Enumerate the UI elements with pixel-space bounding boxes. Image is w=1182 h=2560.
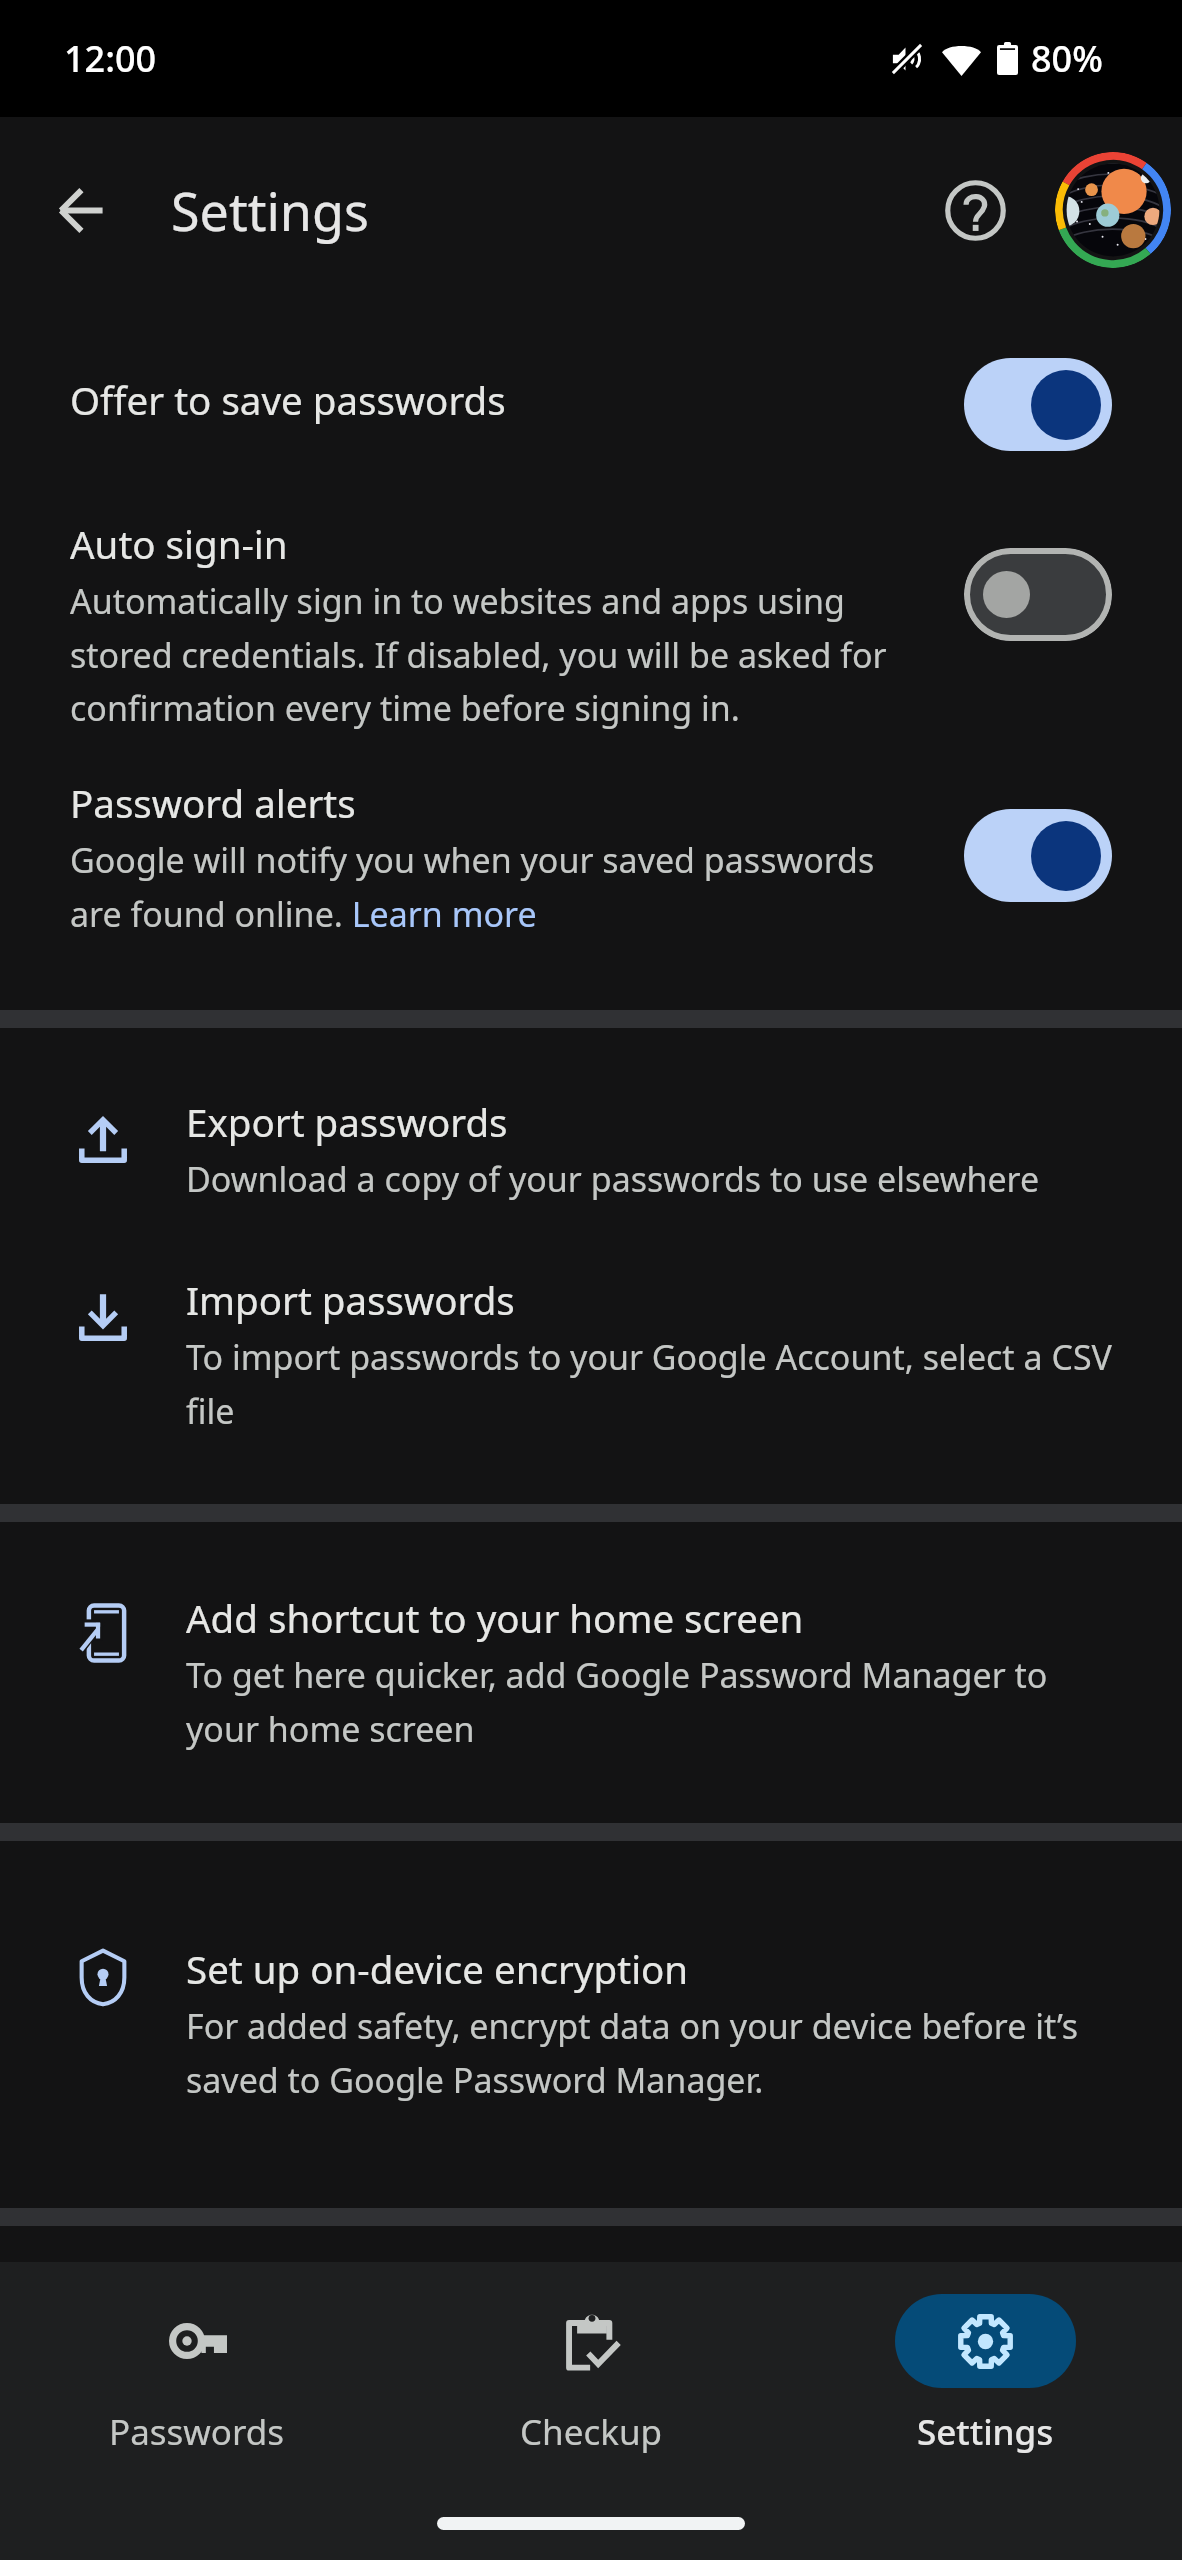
staticText: To get here quicker, add Google Password…: [186, 1652, 1116, 1752]
staticText: Automatically sign in to websites and ap…: [70, 578, 892, 731]
staticText: Settings: [917, 2408, 1054, 2456]
staticText: Auto sign-in: [70, 518, 288, 570]
button[interactable]: Import passwords: [0, 1202, 1182, 1434]
button[interactable]: Checkup: [394, 2294, 788, 2456]
staticText: Add shortcut to your home screen: [186, 1592, 804, 1644]
staticText: Import passwords: [186, 1274, 515, 1326]
button[interactable]: Add shortcut to your home screen: [0, 1522, 1182, 1752]
staticText: Export passwords: [186, 1096, 508, 1148]
button[interactable]: Offer to save passwords: [0, 303, 1182, 467]
staticText: Password alerts: [70, 777, 356, 829]
staticText: Set up on-device encryption: [186, 1943, 689, 1995]
button[interactable]: Off: [964, 548, 1112, 641]
button[interactable]: Auto sign-in: [0, 478, 1182, 731]
staticText: Checkup: [520, 2408, 663, 2456]
button[interactable]: Passwords: [0, 2294, 394, 2456]
staticText: Passwords: [109, 2408, 285, 2456]
button[interactable]: Help: [920, 155, 1030, 265]
staticText: Google will notify you when your saved p…: [70, 837, 892, 937]
button[interactable]: On: [964, 809, 1112, 902]
staticText: Settings: [171, 175, 369, 246]
button[interactable]: Password alerts: [0, 731, 1182, 937]
button[interactable]: On: [964, 358, 1112, 451]
staticText: Download a copy of your passwords to use…: [186, 1156, 1040, 1202]
button[interactable]: Export passwords: [0, 1028, 1182, 1202]
button[interactable]: Account: [1055, 152, 1171, 268]
button[interactable]: Set up on-device encryption: [0, 1841, 1182, 2103]
button[interactable]: Back: [30, 160, 130, 260]
staticText: 80%: [1031, 34, 1103, 83]
staticText: For added safety, encrypt data on your d…: [186, 2003, 1116, 2103]
staticText: To import passwords to your Google Accou…: [186, 1334, 1116, 1434]
staticText: Offer to save passwords: [70, 374, 506, 426]
staticText: 12:00: [64, 34, 157, 83]
button[interactable]: Settings: [788, 2294, 1182, 2456]
